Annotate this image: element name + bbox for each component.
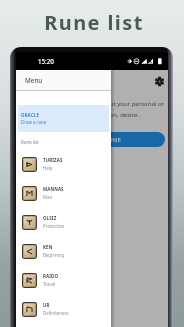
button[interactable]: OLSIZ [16, 208, 111, 237]
staticText: Man [43, 194, 53, 200]
staticText: Rune list [2, 9, 184, 36]
staticText: Think about your personal or [16, 100, 164, 108]
button[interactable]: Menu [16, 70, 111, 90]
staticText: Travel [43, 281, 56, 287]
button[interactable]: UR [16, 295, 111, 324]
staticText: UR [43, 302, 50, 308]
button[interactable]: ORACLE [18, 105, 109, 132]
button[interactable]: MANNAS [16, 179, 111, 208]
staticText: ORACLE [21, 112, 40, 118]
button[interactable]: RAIDO [16, 266, 111, 295]
staticText: MANNAS [43, 186, 64, 192]
button[interactable]: KEN [16, 237, 111, 266]
staticText: TURIZAS [43, 157, 63, 163]
staticText: KEN [43, 244, 53, 250]
staticText: Definiteness [43, 310, 69, 316]
staticText: professional question, desire. [16, 111, 139, 119]
staticText: Menu [25, 76, 43, 85]
button[interactable]: DRAW A RUNE [36, 132, 165, 147]
staticText: Rune list [21, 139, 39, 145]
staticText: RAIDO [43, 273, 59, 279]
staticText: 15:20 [38, 57, 54, 65]
staticText: DRAW A RUNE [80, 136, 121, 144]
button[interactable]: Settings [151, 73, 167, 89]
staticText: Beginning [43, 252, 65, 258]
button[interactable]: TURIZAS [16, 150, 111, 179]
staticText: Protection [43, 223, 65, 229]
staticText: OLSIZ [43, 215, 57, 221]
staticText: Draw a rune [21, 119, 47, 125]
staticText: Help [43, 165, 53, 171]
